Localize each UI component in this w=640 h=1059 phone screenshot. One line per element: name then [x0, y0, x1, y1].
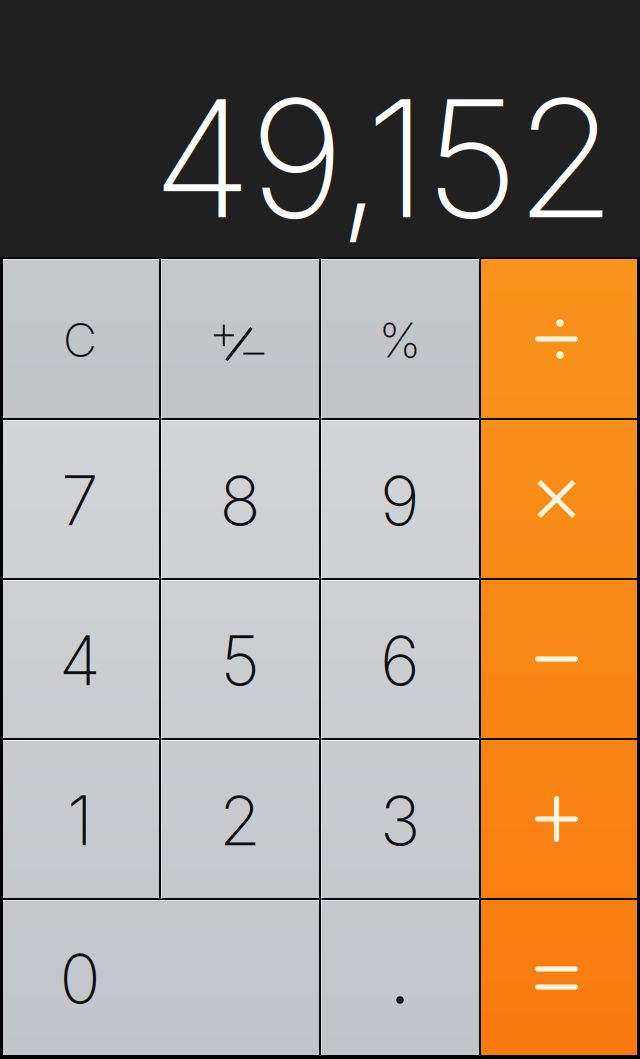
button[interactable]: 7: [0, 419, 160, 579]
staticText: 2: [219, 779, 261, 862]
button[interactable]: Equals: [480, 899, 640, 1059]
button[interactable]: Subtract: [480, 579, 640, 739]
button[interactable]: 9: [320, 419, 480, 579]
staticText: %: [378, 311, 421, 369]
staticText: 49,152: [152, 60, 615, 256]
staticText: 3: [380, 779, 420, 862]
button[interactable]: Percent: [320, 259, 480, 419]
button[interactable]: Add: [480, 739, 640, 899]
button[interactable]: 8: [160, 419, 320, 579]
staticText: 6: [380, 619, 420, 702]
staticText: 5: [220, 619, 259, 702]
button[interactable]: 0: [0, 899, 320, 1059]
button[interactable]: Divide: [480, 259, 640, 419]
staticText: 4: [59, 619, 101, 702]
button[interactable]: 1: [0, 739, 160, 899]
button[interactable]: 2: [160, 739, 320, 899]
staticText: C: [63, 312, 97, 368]
button[interactable]: Multiply: [480, 419, 640, 579]
button[interactable]: 3: [320, 739, 480, 899]
button[interactable]: Decimal point: [320, 899, 480, 1059]
staticText: 9: [380, 459, 420, 542]
button[interactable]: Clear: [0, 259, 160, 419]
button[interactable]: Plus Minus: [160, 259, 320, 419]
button[interactable]: 4: [0, 579, 160, 739]
staticText: 1: [67, 779, 93, 862]
button[interactable]: 6: [320, 579, 480, 739]
button[interactable]: 5: [160, 579, 320, 739]
staticText: 7: [61, 459, 99, 542]
staticText: 0: [59, 937, 100, 1020]
staticText: 8: [219, 459, 260, 542]
